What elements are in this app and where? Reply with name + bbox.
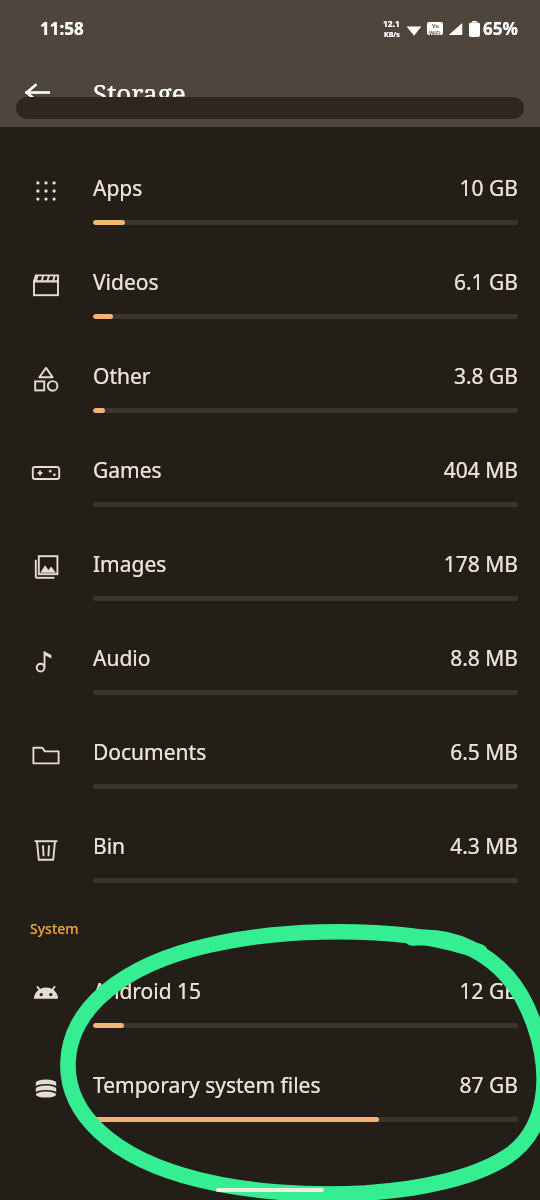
staticText: 87 GB <box>459 1071 518 1100</box>
button[interactable]: Back <box>15 70 59 114</box>
staticText: 4.3 MB <box>450 832 518 861</box>
staticText: Images <box>93 550 167 579</box>
button[interactable]: Games <box>0 439 540 533</box>
button[interactable]: Bin <box>0 815 540 909</box>
staticText: Temporary system files <box>93 1071 321 1100</box>
staticText: Documents <box>93 738 207 767</box>
staticText: 12.1 <box>383 18 400 30</box>
staticText: 6.1 GB <box>453 268 518 297</box>
button[interactable]: Apps <box>0 157 540 251</box>
staticText: System <box>30 919 79 938</box>
button[interactable]: Other <box>0 345 540 439</box>
staticText: 10 GB <box>459 174 518 203</box>
staticText: Videos <box>93 268 159 297</box>
staticText: 6.5 MB <box>450 738 518 767</box>
button[interactable]: Images <box>0 533 540 627</box>
staticText: 8.8 MB <box>450 644 518 673</box>
staticText: WiFi <box>429 29 441 35</box>
staticText: Apps <box>93 174 143 203</box>
button[interactable]: Documents <box>0 721 540 815</box>
button[interactable]: Audio <box>0 627 540 721</box>
staticText: 178 MB <box>443 550 518 579</box>
staticText: 3.8 GB <box>453 362 518 391</box>
staticText: 12 GB <box>459 977 518 1006</box>
staticText: 11:58 <box>40 17 84 40</box>
staticText: Other <box>93 362 151 391</box>
staticText: Android 15 <box>93 977 202 1006</box>
button[interactable]: Temporary system files <box>0 1054 540 1148</box>
staticText: 404 MB <box>443 456 518 485</box>
staticText: Bin <box>93 832 126 861</box>
staticText: Storage <box>93 75 186 110</box>
button[interactable]: Android 15 <box>0 960 540 1054</box>
staticText: KB/s <box>384 30 400 40</box>
staticText: Games <box>93 456 162 485</box>
staticText: Audio <box>93 644 151 673</box>
button[interactable]: Videos <box>0 251 540 345</box>
staticText: 65% <box>483 17 518 40</box>
staticText: Vo <box>432 22 439 29</box>
